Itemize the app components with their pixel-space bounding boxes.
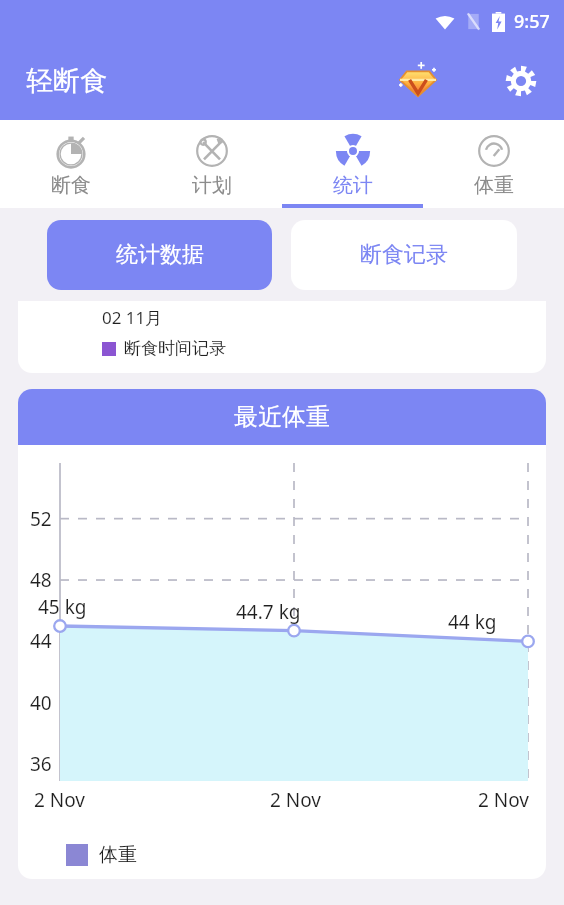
button[interactable]: 体重 (423, 120, 564, 198)
staticText: 45 kg (38, 594, 87, 620)
button[interactable]: 统计数据 (47, 220, 272, 290)
staticText: 2 Nov (34, 787, 86, 813)
staticText: 52 (30, 506, 52, 532)
staticText: 40 (30, 690, 52, 716)
button[interactable]: 断食记录 (291, 220, 517, 290)
button[interactable]: VIP (394, 57, 442, 105)
staticText: 统计数据 (116, 241, 204, 269)
button[interactable]: Settings (498, 58, 544, 104)
staticText: 计划 (192, 173, 232, 198)
staticText: 断食时间记录 (124, 338, 226, 359)
staticText: 44.7 kg (236, 599, 301, 625)
staticText: 断食记录 (360, 241, 448, 269)
staticText: 2 Nov (270, 787, 322, 813)
button[interactable]: 计划 (141, 120, 282, 198)
staticText: 02 11月 (102, 306, 163, 329)
staticText: 轻断食 (26, 64, 107, 98)
button[interactable]: 断食 (0, 120, 141, 198)
staticText: 体重 (99, 843, 137, 867)
staticText: 2 Nov (478, 787, 530, 813)
staticText: 9:57 (514, 9, 550, 34)
staticText: 44 (30, 628, 52, 654)
staticText: 44 kg (448, 609, 497, 635)
staticText: 断食 (51, 173, 91, 198)
staticText: 统计 (333, 173, 373, 198)
staticText: 48 (30, 567, 52, 593)
staticText: 36 (30, 751, 52, 777)
button[interactable]: 02 11月 (18, 301, 546, 373)
button[interactable]: 统计 (282, 120, 423, 198)
staticText: 体重 (474, 173, 514, 198)
staticText: 最近体重 (234, 402, 330, 432)
